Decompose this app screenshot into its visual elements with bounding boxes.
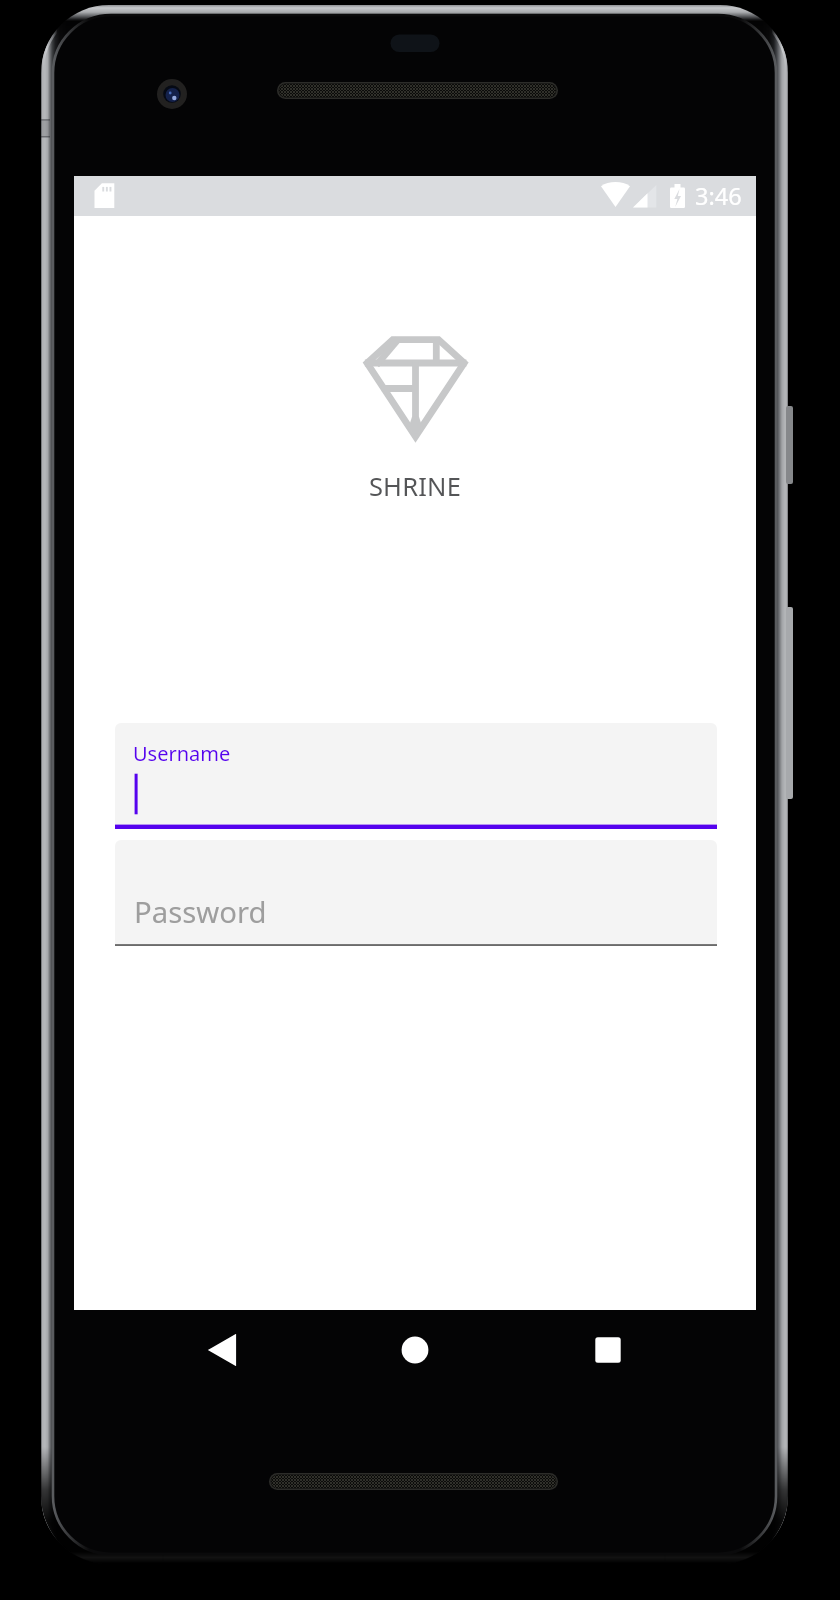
- staticText: SHRINE: [74, 469, 756, 504]
- button[interactable]: Username: [115, 723, 717, 829]
- button[interactable]: Back: [192, 1318, 256, 1382]
- button[interactable]: Recent apps: [576, 1318, 640, 1382]
- button[interactable]: Password: [115, 840, 717, 946]
- staticText: Password: [134, 892, 267, 932]
- staticText: 3:46: [695, 180, 742, 212]
- button[interactable]: Home: [383, 1318, 447, 1382]
- staticText: Username: [133, 740, 231, 767]
